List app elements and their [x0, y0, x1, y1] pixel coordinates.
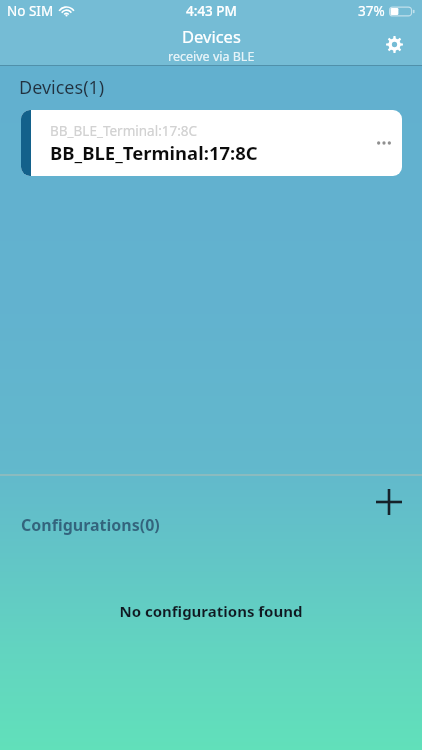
button[interactable]: Settings [376, 26, 412, 62]
staticText: No configurations found [0, 601, 422, 621]
staticText: 4:43 PM [186, 2, 237, 20]
staticText: BB_BLE_Terminal:17:8C [50, 122, 198, 140]
staticText: receive via BLE [168, 48, 255, 65]
staticText: 37% [358, 2, 385, 20]
staticText: Devices(1) [19, 75, 105, 100]
staticText: BB_BLE_Terminal:17:8C [50, 140, 258, 165]
button[interactable]: More options [366, 125, 402, 161]
button[interactable]: Add configuration [366, 479, 411, 524]
staticText: Configurations(0) [21, 514, 160, 536]
staticText: Devices [182, 25, 241, 47]
button[interactable]: BB_BLE_Terminal:17:8C [21, 110, 402, 176]
staticText: No SIM [7, 2, 54, 20]
